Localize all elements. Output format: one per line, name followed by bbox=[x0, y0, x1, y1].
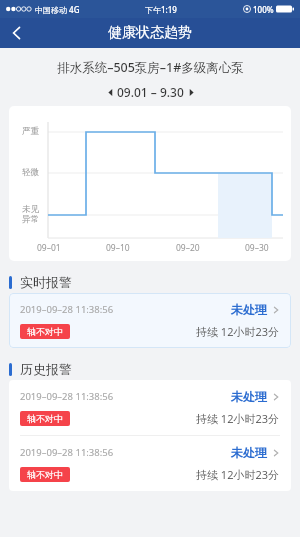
button[interactable]: Back bbox=[0, 18, 34, 48]
staticText: 持续 12小时23分 bbox=[196, 467, 280, 482]
staticText: 历史报警 bbox=[20, 361, 72, 377]
staticText: 轴不对中 bbox=[27, 413, 63, 424]
staticText: 未处理 bbox=[231, 389, 267, 404]
button[interactable]: 2019–09–28 11:38:56 bbox=[9, 436, 291, 491]
staticText: 轴不对中 bbox=[27, 469, 63, 480]
staticText: 2019–09–28 11:38:56 bbox=[20, 390, 114, 403]
button[interactable]: Next period bbox=[184, 85, 198, 99]
staticText: 未处理 bbox=[231, 445, 267, 460]
staticText: 09–30 bbox=[245, 242, 269, 254]
button[interactable]: 2019–09–28 11:38:56 bbox=[9, 293, 291, 348]
staticText: 健康状态趋势 bbox=[108, 24, 192, 42]
staticText: 未见 异常 bbox=[22, 204, 39, 225]
button[interactable]: Previous period bbox=[103, 85, 117, 99]
staticText: 09–20 bbox=[176, 242, 200, 254]
staticText: 下午1:19 bbox=[145, 4, 177, 15]
staticText: 09–10 bbox=[106, 242, 130, 254]
staticText: 09.01 – 9.30 bbox=[117, 84, 184, 100]
staticText: 2019–09–28 11:38:56 bbox=[20, 303, 114, 316]
staticText: 轻微 bbox=[22, 167, 39, 178]
staticText: 轴不对中 bbox=[27, 326, 63, 337]
staticText: 100% bbox=[253, 4, 274, 15]
staticText: 排水系统–505泵房–1#多级离心泵 bbox=[57, 59, 244, 76]
staticText: 持续 12小时23分 bbox=[196, 324, 280, 339]
staticText: 09–01 bbox=[37, 242, 61, 254]
staticText: 持续 12小时23分 bbox=[196, 411, 280, 426]
staticText: 未处理 bbox=[231, 302, 267, 317]
staticText: 2019–09–28 11:38:56 bbox=[20, 446, 114, 459]
staticText: 严重 bbox=[22, 126, 39, 137]
staticText: 实时报警 bbox=[20, 274, 72, 290]
button[interactable]: 2019–09–28 11:38:56 bbox=[9, 380, 291, 435]
staticText: 中国移动 4G bbox=[35, 4, 80, 15]
